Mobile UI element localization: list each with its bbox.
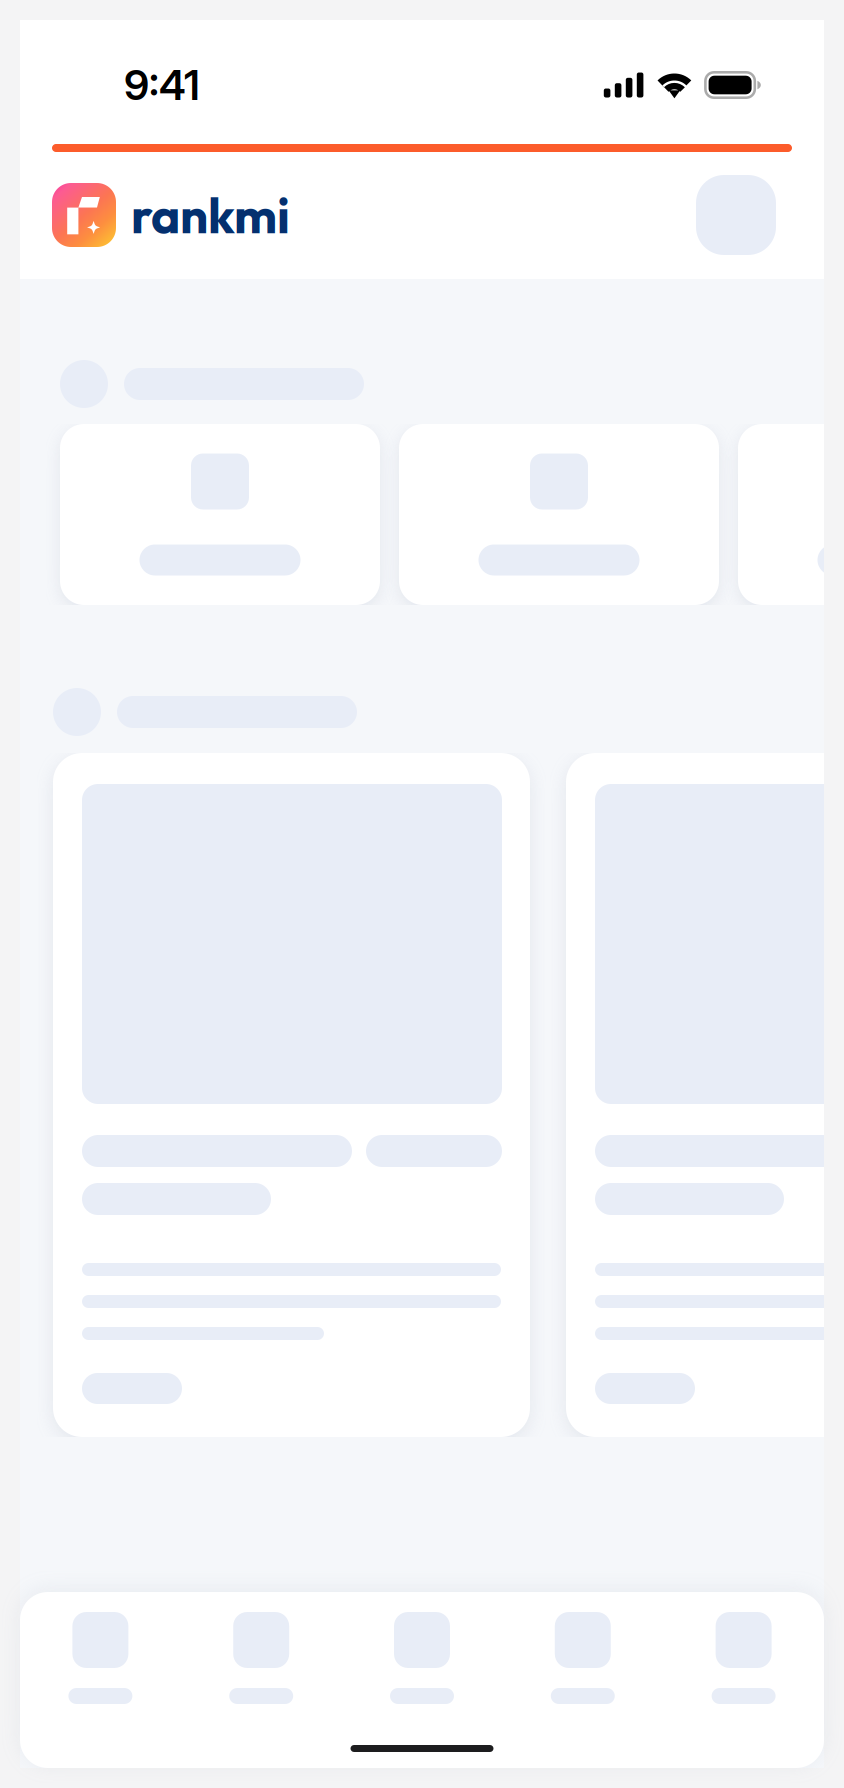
button[interactable]: Shortcut — [738, 424, 844, 605]
button[interactable]: Tab — [502, 1612, 663, 1704]
button[interactable]: Tab — [663, 1612, 824, 1704]
button[interactable]: Tab — [181, 1612, 342, 1704]
button[interactable]: Feed item — [566, 753, 844, 1437]
button[interactable]: Tab — [342, 1612, 502, 1704]
button[interactable]: Shortcut — [399, 424, 719, 605]
button[interactable]: Shortcut — [60, 424, 380, 605]
button[interactable]: rankmi home — [52, 183, 290, 247]
staticText: rankmi — [131, 184, 290, 246]
button[interactable]: Profile — [696, 175, 776, 255]
staticText: 9:41 — [124, 60, 200, 110]
button[interactable]: Feed item — [53, 753, 530, 1437]
button[interactable]: Tab — [20, 1612, 181, 1704]
